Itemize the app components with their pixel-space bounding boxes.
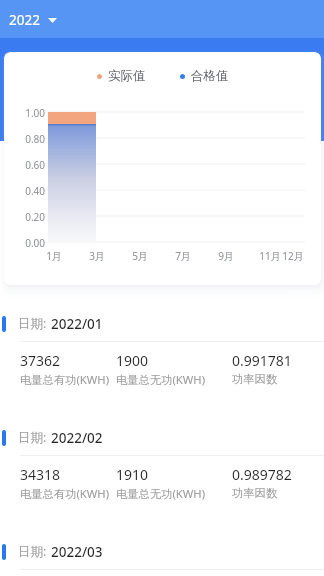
staticText: 0.991781	[232, 351, 292, 370]
staticText: 电量总有功(KWH)	[20, 486, 110, 501]
staticText: 实际值	[108, 68, 146, 84]
staticText: 11月	[254, 249, 286, 263]
staticText: 功率因数	[232, 486, 278, 500]
staticText: 2022/02	[51, 429, 103, 447]
staticText: 日期:	[18, 429, 47, 446]
staticText: 1月	[38, 249, 70, 263]
staticText: 电量总无功(KWH)	[116, 372, 206, 387]
staticText: 0.00	[18, 236, 45, 250]
staticText: 1910	[116, 465, 149, 484]
staticText: 5月	[124, 249, 156, 263]
button[interactable]: 日期:	[0, 420, 324, 534]
staticText: 1.00	[18, 106, 45, 120]
staticText: 9月	[210, 249, 242, 263]
staticText: 2022/03	[51, 543, 103, 561]
staticText: 0.60	[18, 158, 45, 172]
staticText: 功率因数	[232, 372, 278, 386]
staticText: 0.80	[18, 132, 45, 146]
staticText: 日期:	[18, 315, 47, 332]
staticText: 34318	[20, 465, 61, 484]
button[interactable]: 日期:	[0, 534, 324, 576]
staticText: 12月	[277, 249, 309, 263]
staticText: 3月	[81, 249, 113, 263]
staticText: 1900	[116, 351, 149, 370]
staticText: 2022	[9, 11, 40, 29]
button[interactable]: 2022	[6, 6, 60, 34]
staticText: 日期:	[18, 543, 47, 560]
staticText: 0.20	[18, 210, 45, 224]
staticText: 7月	[167, 249, 199, 263]
staticText: 0.989782	[232, 465, 292, 484]
staticText: 电量总有功(KWH)	[20, 372, 110, 387]
staticText: 0.40	[18, 184, 45, 198]
button[interactable]: 日期:	[0, 306, 324, 420]
staticText: 2022/01	[51, 315, 103, 333]
staticText: 电量总无功(KWH)	[116, 486, 206, 501]
staticText: 37362	[20, 351, 61, 370]
staticText: 合格值	[191, 68, 229, 84]
